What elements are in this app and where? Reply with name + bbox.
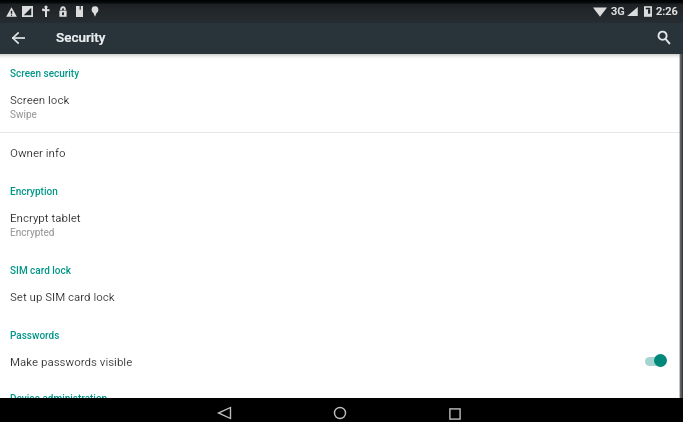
button[interactable]: Owner info — [0, 136, 683, 170]
button[interactable]: Encryption — [0, 184, 683, 202]
staticText: Make passwords visible — [10, 355, 133, 368]
staticText: 3G — [611, 5, 625, 18]
button[interactable]: Passwords — [0, 328, 683, 346]
staticText: Encrypted — [10, 227, 55, 239]
button[interactable]: Screen lock — [0, 83, 683, 129]
button[interactable]: Encrypt tablet — [0, 201, 683, 247]
button[interactable]: Make passwords visible — [0, 345, 683, 379]
button[interactable]: Search — [650, 23, 677, 54]
button[interactable]: Device administration — [0, 391, 683, 409]
staticText: 2:26 — [656, 5, 678, 18]
button[interactable]: Set up SIM card lock — [0, 280, 683, 314]
button[interactable]: SIM card lock — [0, 263, 683, 281]
button[interactable]: Make passwords visible — [636, 348, 676, 374]
staticText: Passwords — [10, 330, 60, 342]
button[interactable]: Back — [209, 398, 241, 422]
staticText: Screen security — [10, 68, 80, 80]
button[interactable]: Screen security — [0, 66, 683, 84]
staticText: Security — [56, 29, 106, 45]
staticText: Set up SIM card lock — [10, 290, 115, 303]
staticText: Screen lock — [10, 93, 70, 106]
staticText: Swipe — [10, 109, 37, 121]
staticText: Device administration — [10, 393, 108, 405]
button[interactable]: Navigate up — [6, 23, 31, 54]
staticText: SIM card lock — [10, 265, 71, 277]
button[interactable]: Recent apps — [439, 398, 471, 422]
staticText: Encrypt tablet — [10, 211, 81, 224]
button[interactable]: Home — [324, 398, 356, 422]
staticText: Encryption — [10, 186, 58, 198]
staticText: Owner info — [10, 146, 66, 159]
